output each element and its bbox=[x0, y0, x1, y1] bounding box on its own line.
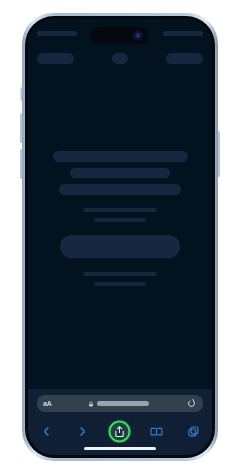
button[interactable]: Tabs bbox=[175, 418, 212, 445]
staticText: aA bbox=[43, 399, 52, 409]
button[interactable]: Bookmarks bbox=[138, 418, 175, 445]
button[interactable]: Back bbox=[28, 418, 64, 445]
button[interactable]: Forward bbox=[64, 418, 101, 445]
button[interactable]: aA bbox=[37, 395, 203, 412]
button[interactable]: Reload bbox=[186, 398, 197, 409]
button[interactable]: Share bbox=[101, 418, 138, 445]
